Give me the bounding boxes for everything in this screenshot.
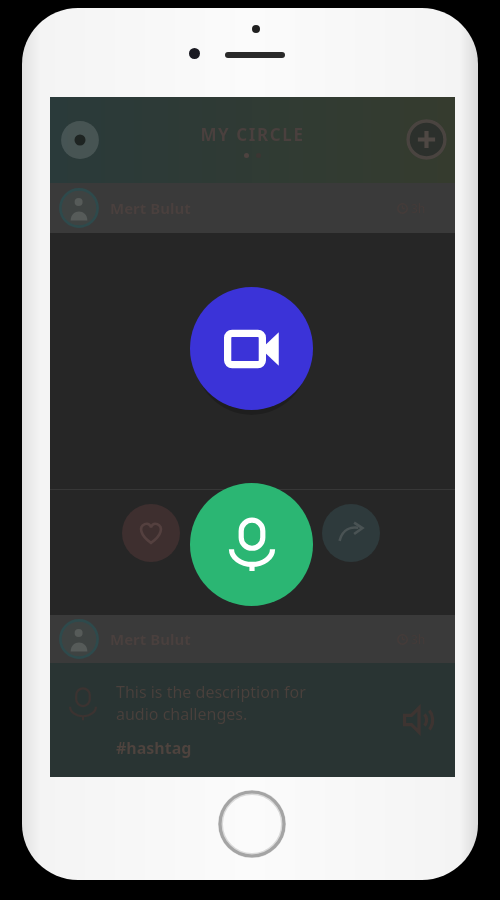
button[interactable]: Like	[122, 504, 180, 562]
button[interactable]: Share	[322, 504, 380, 562]
button[interactable]: Profile	[58, 118, 102, 162]
button[interactable]: Record video	[190, 287, 313, 410]
button[interactable]: Mert Bulut	[50, 183, 455, 233]
staticText: This is the description for audio challe…	[116, 681, 306, 725]
staticText: Mert Bulut	[110, 629, 191, 649]
button[interactable]: Play audio	[400, 701, 438, 739]
button[interactable]: Record audio	[190, 483, 313, 606]
button[interactable]: Home	[218, 790, 286, 858]
button[interactable]: Add	[406, 119, 447, 160]
button[interactable]: This is the description for audio challe…	[50, 663, 455, 777]
staticText: #hashtag	[116, 737, 192, 759]
staticText: Mert Bulut	[110, 198, 191, 218]
staticText: MY CIRCLE	[200, 123, 305, 146]
button[interactable]: Mert Bulut	[50, 615, 455, 663]
